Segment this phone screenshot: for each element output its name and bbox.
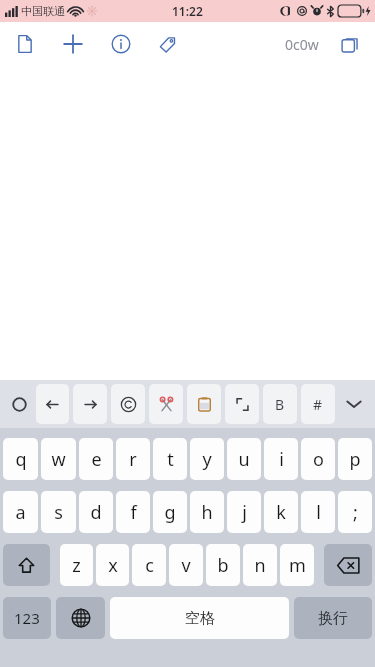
button[interactable]: Info [108,31,134,57]
button[interactable]: s [41,491,76,533]
button[interactable]: t [153,438,187,480]
staticText: g [164,500,176,525]
button[interactable]: n [243,544,277,586]
button[interactable]: 空格 [110,597,289,639]
button[interactable]: New document [12,31,38,57]
button[interactable]: q [3,438,38,480]
button[interactable]: i [264,438,298,480]
button[interactable]: Hide keyboard [337,380,371,428]
staticText: 0c0w [285,35,319,54]
staticText: 中国联通 [21,4,65,18]
staticText: 123 [14,608,40,628]
staticText: j [242,500,247,525]
button[interactable]: Switch language [56,597,105,639]
button[interactable]: Paste [187,384,221,424]
button[interactable]: 0c0w [283,31,321,58]
button[interactable]: d [79,491,113,533]
button[interactable]: k [264,491,298,533]
button[interactable]: Tag [154,31,180,57]
staticText: 11:22 [172,3,203,19]
staticText: ; [353,500,358,525]
button[interactable]: l [301,491,335,533]
button[interactable]: f [116,491,150,533]
staticText: k [276,500,286,525]
button[interactable]: w [41,438,76,480]
staticText: d [90,500,102,525]
staticText: u [238,447,250,472]
button[interactable]: Add [60,31,86,57]
button[interactable]: p [338,438,372,480]
button[interactable]: Quotes [225,384,259,424]
button[interactable]: h [190,491,224,533]
button[interactable]: b [206,544,240,586]
button[interactable]: # [301,384,335,424]
button[interactable]: u [227,438,261,480]
staticText: e [91,447,102,472]
staticText: # [313,395,323,414]
staticText: 空格 [185,609,215,628]
button[interactable]: Backspace [324,544,372,586]
staticText: r [129,447,137,472]
button[interactable]: 123 [3,597,51,639]
staticText: x [108,553,118,578]
staticText: h [201,500,213,525]
button[interactable]: j [227,491,261,533]
staticText: v [181,553,191,578]
button[interactable]: Windows [337,32,363,58]
button[interactable]: Record [4,380,34,428]
button[interactable]: Copyright [111,384,145,424]
staticText: n [254,553,266,578]
button[interactable]: Cut [149,384,183,424]
staticText: t [167,447,174,472]
button[interactable]: ; [338,491,372,533]
staticText: l [316,500,321,525]
button[interactable]: 换行 [294,597,372,639]
button[interactable]: e [79,438,113,480]
button[interactable]: Redo [73,384,107,424]
button[interactable]: Shift [3,544,50,586]
staticText: b [217,553,229,578]
staticText: q [15,447,27,472]
staticText: m [289,553,306,578]
button[interactable]: g [153,491,187,533]
staticText: p [349,447,361,472]
button[interactable]: z [60,544,93,586]
button[interactable]: x [96,544,129,586]
staticText: B [275,395,285,414]
staticText: y [202,447,212,472]
button[interactable]: y [190,438,224,480]
button[interactable]: Undo [36,384,69,424]
staticText: o [313,447,324,472]
staticText: s [54,500,63,525]
button[interactable]: a [3,491,38,533]
staticText: z [72,553,81,578]
staticText: f [130,500,137,525]
staticText: i [279,447,284,472]
button[interactable]: B [263,384,297,424]
staticText: c [145,553,154,578]
staticText: a [15,500,26,525]
staticText: 换行 [318,609,348,628]
button[interactable]: o [301,438,335,480]
button[interactable]: v [169,544,203,586]
staticText: w [51,447,66,472]
button[interactable]: m [280,544,314,586]
button[interactable]: c [132,544,166,586]
button[interactable]: r [116,438,150,480]
